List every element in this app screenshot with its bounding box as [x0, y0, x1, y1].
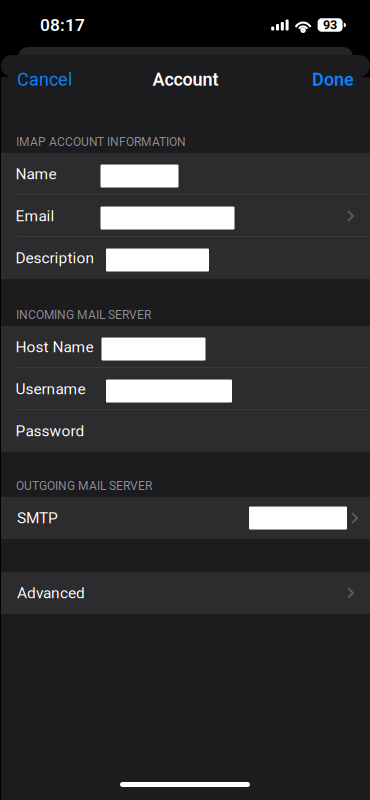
staticText: Account	[152, 69, 218, 90]
staticText: INCOMING MAIL SERVER	[16, 308, 151, 322]
staticText: Name	[15, 165, 56, 183]
staticText: Email	[15, 207, 54, 225]
button[interactable]: Advanced	[1, 572, 370, 614]
staticText: Done	[312, 69, 354, 90]
staticText: Password	[15, 422, 84, 440]
staticText: Advanced	[17, 584, 85, 602]
staticText: Cancel	[17, 69, 72, 90]
button[interactable]: Name	[1, 153, 370, 195]
staticText: SMTP	[17, 509, 58, 527]
staticText: 08:17	[40, 15, 85, 35]
button[interactable]: Description	[1, 237, 370, 279]
button[interactable]: Email	[1, 195, 370, 237]
staticText: OUTGOING MAIL SERVER	[16, 479, 152, 493]
button[interactable]: Cancel	[1, 57, 72, 101]
button[interactable]: Done	[312, 57, 370, 101]
staticText: Description	[15, 249, 94, 267]
staticText: Username	[15, 380, 85, 398]
button[interactable]: Password	[1, 410, 370, 452]
staticText: Host Name	[15, 338, 93, 356]
button[interactable]: SMTP	[1, 497, 370, 539]
staticText: IMAP ACCOUNT INFORMATION	[16, 135, 186, 149]
button[interactable]: Username	[1, 368, 370, 410]
button[interactable]: Host Name	[1, 326, 370, 368]
staticText: 93	[323, 18, 337, 32]
